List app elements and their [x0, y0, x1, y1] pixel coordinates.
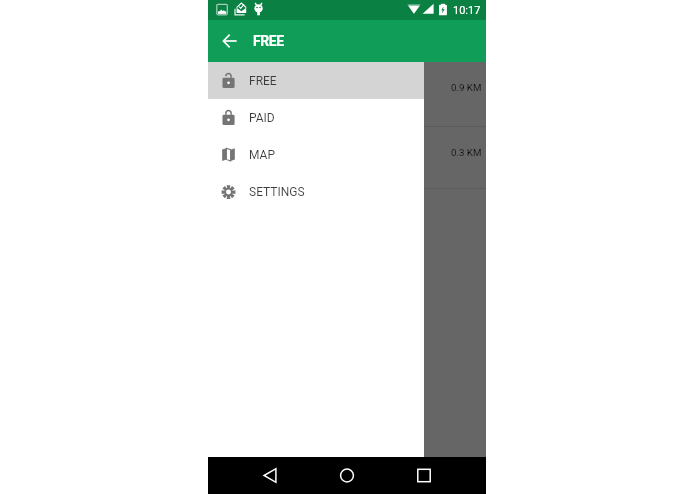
button[interactable]: FREE [208, 62, 424, 99]
staticText: FREE [249, 74, 277, 88]
button[interactable]: 0.3 KM [208, 127, 486, 188]
button[interactable]: 0.9 KM [208, 62, 486, 126]
staticText: 0.9 KM [451, 82, 482, 93]
button[interactable]: Back [248, 457, 292, 494]
staticText: 0.3 KM [451, 147, 482, 158]
button[interactable]: Navigate up [218, 29, 242, 53]
button[interactable]: SETTINGS [208, 173, 424, 210]
button[interactable]: PAID [208, 99, 424, 136]
staticText: MAP [249, 148, 275, 162]
button[interactable]: Home [325, 457, 369, 494]
staticText: FREE [253, 33, 284, 49]
staticText: PAID [249, 111, 275, 125]
staticText: 10:17 [453, 4, 481, 17]
staticText: SETTINGS [249, 185, 305, 199]
button[interactable]: MAP [208, 136, 424, 173]
button[interactable]: Recent apps [402, 457, 446, 494]
